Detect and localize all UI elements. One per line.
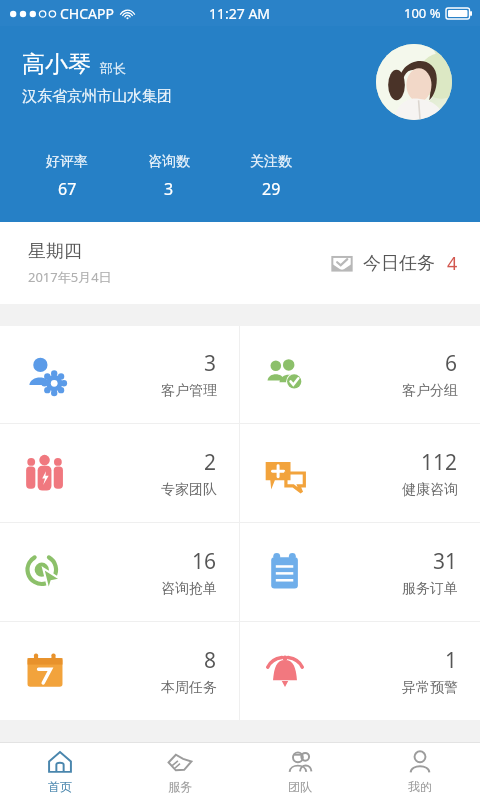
staticText: 1 [445, 646, 458, 675]
staticText: 团队 [288, 779, 312, 794]
staticText: 健康咨询 [402, 481, 458, 499]
staticText: 2 [204, 448, 217, 477]
staticText: 部长 [100, 60, 126, 76]
button[interactable]: 咨询数 [118, 153, 220, 200]
button[interactable]: Profile avatar [376, 44, 452, 120]
button[interactable]: 31 [240, 523, 480, 621]
staticText: 112 [421, 448, 458, 477]
button[interactable]: 8 [0, 622, 239, 720]
staticText: 专家团队 [161, 481, 217, 499]
staticText: CHCAPP [60, 4, 114, 23]
button[interactable]: 3 [0, 326, 239, 423]
staticText: 31 [433, 547, 458, 576]
button[interactable]: 今日任务 [331, 251, 458, 276]
staticText: 16 [192, 547, 217, 576]
staticText: 服务 [168, 779, 192, 794]
button[interactable]: 团队 [240, 743, 360, 800]
staticText: 2017年5月4日 [28, 268, 112, 286]
staticText: 8 [204, 646, 217, 675]
staticText: 我的 [408, 779, 432, 794]
button[interactable]: 112 [240, 424, 480, 522]
staticText: 咨询抢单 [161, 580, 217, 598]
button[interactable]: 服务 [120, 743, 240, 800]
staticText: 3 [164, 178, 174, 200]
staticText: 100 % [404, 4, 441, 22]
button[interactable]: 1 [240, 622, 480, 720]
staticText: 咨询数 [148, 153, 190, 171]
button[interactable]: 首页 [0, 743, 120, 800]
button[interactable]: 2 [0, 424, 239, 522]
staticText: 11:27 AM [209, 4, 271, 23]
button[interactable]: 好评率 [16, 153, 118, 200]
staticText: 今日任务 [363, 252, 435, 275]
staticText: 67 [58, 178, 77, 200]
button[interactable]: 关注数 [220, 153, 322, 200]
staticText: 高小琴 [22, 50, 91, 79]
staticText: 异常预警 [402, 679, 458, 697]
staticText: 客户分组 [402, 382, 458, 400]
button[interactable]: 我的 [360, 743, 480, 800]
staticText: 首页 [48, 779, 72, 794]
staticText: 汉东省京州市山水集团 [22, 87, 172, 106]
button[interactable]: 6 [240, 326, 480, 423]
staticText: 好评率 [46, 153, 88, 171]
staticText: 服务订单 [402, 580, 458, 598]
staticText: 客户管理 [161, 382, 217, 400]
staticText: 4 [447, 251, 458, 276]
staticText: 3 [204, 349, 217, 378]
staticText: 关注数 [250, 153, 292, 171]
staticText: 6 [445, 349, 458, 378]
staticText: 星期四 [28, 240, 82, 263]
button[interactable]: 16 [0, 523, 239, 621]
staticText: 29 [262, 178, 281, 200]
staticText: 本周任务 [161, 679, 217, 697]
